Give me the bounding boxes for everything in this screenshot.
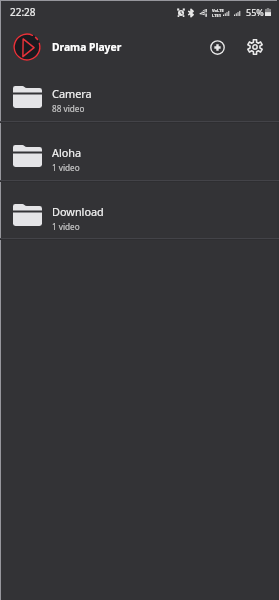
staticText: 1 video: [52, 162, 80, 173]
button[interactable]: Camera: [0, 63, 279, 122]
staticText: VoLTE: [212, 8, 224, 13]
staticText: Download: [52, 204, 104, 219]
button[interactable]: Add folder: [203, 33, 231, 61]
staticText: 55%: [246, 6, 264, 18]
staticText: Camera: [52, 86, 92, 101]
button[interactable]: Aloha: [0, 122, 279, 181]
staticText: 22:28: [10, 5, 36, 19]
staticText: LTE1: [212, 13, 221, 18]
button[interactable]: Download: [0, 181, 279, 240]
button[interactable]: Settings: [241, 33, 269, 61]
staticText: Aloha: [52, 145, 82, 160]
staticText: 1 video: [52, 221, 80, 232]
staticText: Drama Player: [52, 40, 122, 54]
staticText: 88 video: [52, 103, 85, 114]
